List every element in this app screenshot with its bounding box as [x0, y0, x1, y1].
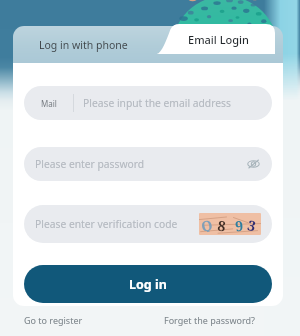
button[interactable]: Show password: [246, 157, 260, 171]
button[interactable]: Mail: [24, 86, 272, 120]
staticText: Log in: [129, 276, 167, 293]
staticText: Please input the email address: [83, 96, 231, 110]
staticText: Email Login: [188, 32, 249, 47]
staticText: Forget the password?: [164, 314, 255, 326]
staticText: Log in with phone: [39, 38, 128, 52]
button[interactable]: Forget the password?: [164, 314, 255, 326]
button[interactable]: Email Login: [155, 24, 275, 54]
button[interactable]: Go to register: [24, 314, 83, 326]
staticText: 3: [246, 215, 258, 233]
button[interactable]: Please enter verification code: [24, 205, 272, 243]
button[interactable]: Refresh verification code: [199, 213, 261, 235]
staticText: 9: [234, 216, 244, 232]
staticText: Go to register: [24, 314, 83, 326]
button[interactable]: Log in with phone: [13, 26, 153, 63]
staticText: 8: [217, 215, 227, 232]
staticText: Mail: [41, 98, 57, 109]
staticText: Please enter verification code: [35, 217, 199, 231]
staticText: Q: [199, 215, 215, 233]
button[interactable]: Log in: [24, 265, 272, 303]
button[interactable]: Please enter password: [24, 147, 272, 181]
staticText: Please enter password: [35, 157, 246, 171]
